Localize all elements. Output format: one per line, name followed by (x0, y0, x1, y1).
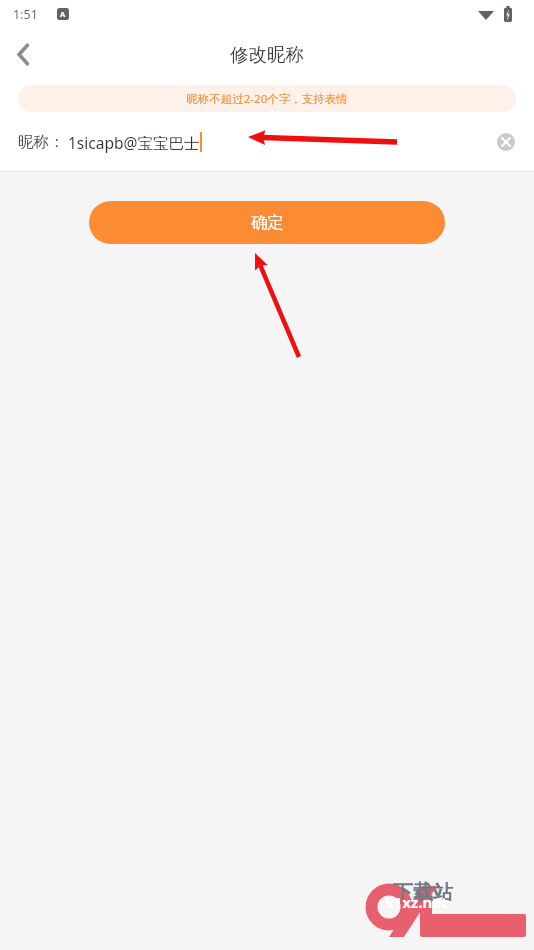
staticText: 确定 (251, 212, 284, 233)
staticText: 昵称： (18, 132, 65, 152)
staticText: 1sicapb@宝宝巴士 (68, 132, 200, 153)
button[interactable]: Clear text (491, 127, 521, 157)
staticText: A (60, 9, 66, 19)
staticText: 昵称不超过2-20个字，支持表情 (186, 91, 348, 107)
staticText: 91xz.net (385, 892, 448, 912)
button[interactable]: Back (0, 31, 46, 77)
staticText: 修改昵称 (230, 43, 304, 66)
button[interactable]: 确定 (89, 201, 445, 244)
staticText: 下载站 (393, 880, 453, 905)
staticText: 1:51 (13, 6, 38, 23)
